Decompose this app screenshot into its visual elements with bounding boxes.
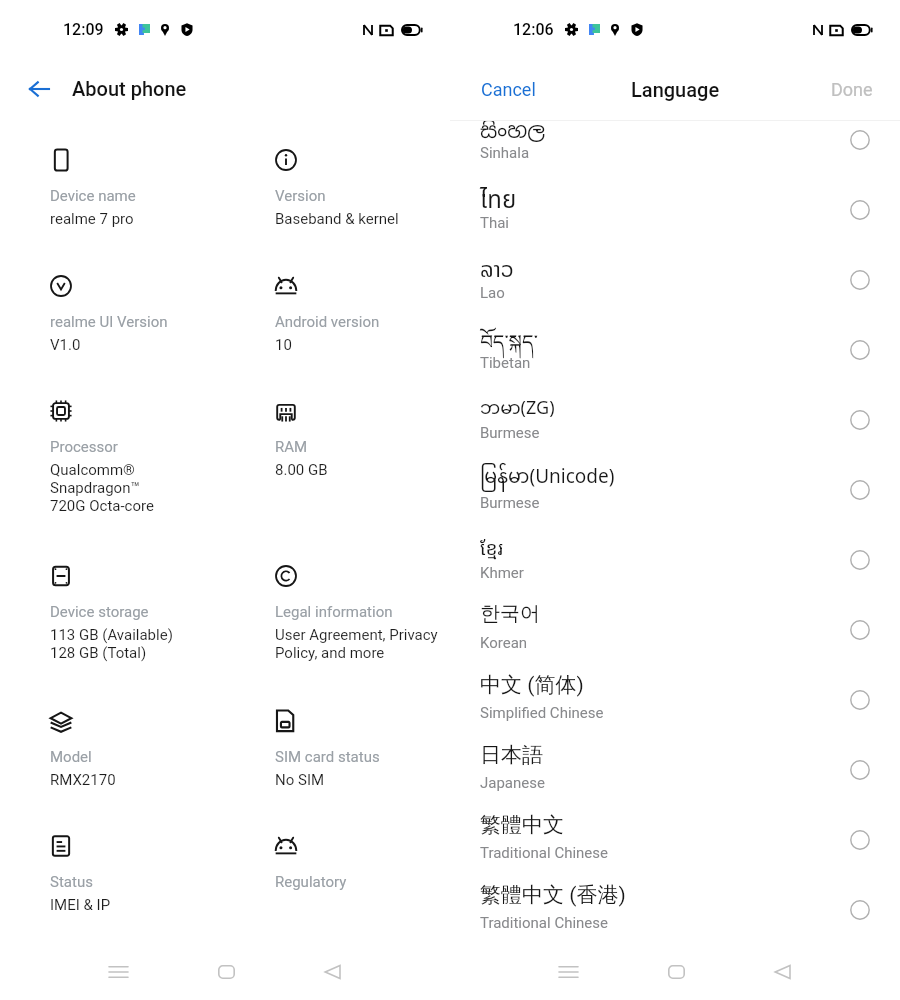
staticText: ລາວ [480,251,514,287]
staticText: User Agreement, Privacy [275,626,438,644]
button[interactable]: Model [50,710,250,789]
button[interactable]: ไทย [450,175,900,245]
staticText: IMEI & IP [50,896,111,914]
staticText: V1.0 [50,336,81,354]
staticText: Baseband & kernel [275,210,399,228]
staticText: Done [831,79,873,100]
staticText: ဘမာ(ZG) [480,390,555,429]
staticText: Sinhala [480,144,530,162]
staticText: Policy, and more [275,644,385,662]
staticText: Processor [50,438,118,456]
button[interactable]: 日本語 [450,735,900,805]
staticText: realme 7 pro [50,210,134,228]
staticText: བོད་སྐད་ [480,320,538,376]
button[interactable]: Device storage [50,565,250,662]
staticText: မြန်မာ(Unicode) [480,458,615,499]
button[interactable]: Home [652,948,700,996]
button[interactable]: Legal information [275,565,450,662]
staticText: No SIM [275,771,325,789]
staticText: Regulatory [275,873,347,891]
staticText: Device storage [50,603,149,621]
staticText: 10 [275,336,292,354]
staticText: Android version [275,313,380,331]
staticText: Qualcomm® [50,461,135,479]
staticText: Snapdragon™ [50,479,140,497]
button[interactable]: ខ្មែរ [450,525,900,595]
staticText: Thai [480,214,510,232]
button[interactable]: Device name [50,149,250,228]
staticText: සිංහල [480,121,546,144]
staticText: About phone [72,77,187,100]
button[interactable]: Android version [275,275,450,354]
button[interactable]: 中文 (简体) [450,665,900,735]
staticText: ខ្មែរ [480,535,504,561]
staticText: Status [50,873,93,891]
button[interactable]: Cancel [460,62,570,116]
staticText: realme UI Version [50,313,168,331]
staticText: Model [50,748,92,766]
button[interactable]: Back [758,948,806,996]
button[interactable]: 한국어 [450,595,900,665]
button[interactable]: Back [308,948,356,996]
button[interactable]: Recents [544,948,592,996]
staticText: Burmese [480,494,540,512]
staticText: Legal information [275,603,393,621]
button[interactable]: Regulatory [275,835,450,896]
staticText: 128 GB (Total) [50,644,147,662]
button[interactable]: realme UI Version [50,275,250,354]
button[interactable]: 繁體中文 [450,805,900,875]
staticText: Khmer [480,564,524,582]
staticText: Tibetan [480,354,531,372]
staticText: Device name [50,187,136,205]
staticText: 日本語 [480,742,543,768]
staticText: Lao [480,284,505,302]
staticText: Version [275,187,326,205]
staticText: 720G Octa-core [50,497,154,515]
button[interactable]: SIM card status [275,710,450,789]
button[interactable]: 繁體中文 (香港) [450,875,900,931]
button[interactable]: བོད་སྐད་ [450,315,900,385]
staticText: Korean [480,634,528,652]
button[interactable]: မြန်မာ(Unicode) [450,455,900,525]
staticText: Traditional Chinese [480,914,608,931]
staticText: Simplified Chinese [480,704,604,722]
button[interactable]: Processor [50,400,250,515]
staticText: SIM card status [275,748,380,766]
staticText: Cancel [481,79,536,100]
staticText: Japanese [480,774,545,792]
staticText: 8.00 GB [275,461,328,479]
staticText: 12:06 [513,20,554,39]
button[interactable]: Back [15,65,63,113]
button[interactable]: Version [275,149,450,228]
button[interactable]: සිංහල [450,121,900,175]
button[interactable]: Recents [94,948,142,996]
button[interactable]: Done [790,62,900,116]
button[interactable]: Home [202,948,250,996]
staticText: Traditional Chinese [480,844,608,862]
staticText: 한국어 [480,601,540,626]
button[interactable]: ລາວ [450,245,900,315]
staticText: ไทย [480,183,517,219]
staticText: Burmese [480,424,540,442]
staticText: RAM [275,438,308,456]
staticText: 12:09 [63,20,104,39]
staticText: 113 GB (Available) [50,626,173,644]
staticText: Language [631,78,720,101]
button[interactable]: Status [50,835,250,914]
staticText: 繁體中文 (香港) [480,882,626,908]
button[interactable]: RAM [275,400,450,479]
button[interactable]: ဘမာ(ZG) [450,385,900,455]
staticText: RMX2170 [50,771,116,789]
staticText: 繁體中文 [480,812,564,838]
staticText: 中文 (简体) [480,672,584,698]
